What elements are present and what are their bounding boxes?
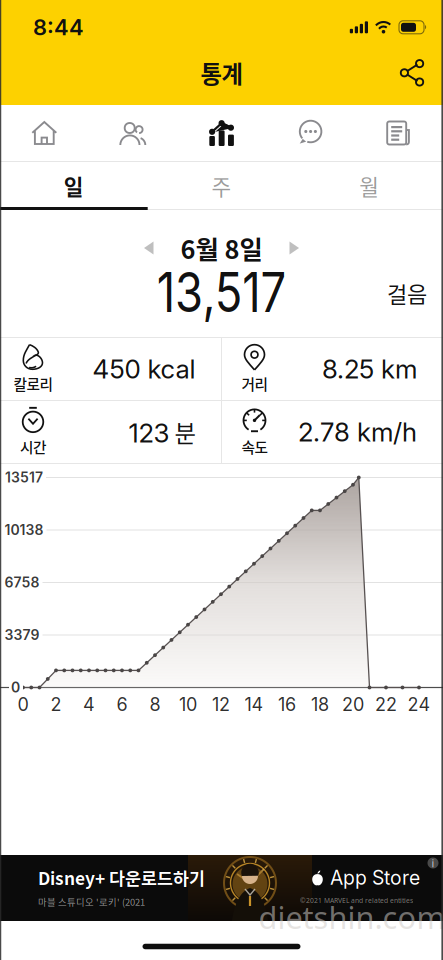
staticText: 분 <box>174 415 195 449</box>
staticText: 거리 <box>241 373 267 394</box>
staticText: 마블 스튜디오 '로키' (2021 <box>38 895 145 908</box>
staticText: 통계 <box>200 56 242 90</box>
staticText: 걸음 <box>387 277 427 309</box>
staticText: 일 <box>64 171 84 201</box>
staticText: 속도 <box>241 436 267 457</box>
staticText: 8:44 <box>33 14 84 41</box>
staticText: 2.78 km/h <box>298 416 417 448</box>
staticText: 0 <box>17 694 28 715</box>
staticText: i <box>431 856 434 870</box>
staticText: Disney+ 다운로드하기 <box>38 865 205 890</box>
staticText: 10 <box>179 694 197 715</box>
staticText: 8 <box>149 694 160 715</box>
button[interactable]: 주 <box>148 162 295 210</box>
staticText: 12 <box>212 694 230 715</box>
button[interactable]: 홈 <box>0 105 89 161</box>
staticText: 3379 <box>4 626 39 643</box>
staticText: 주 <box>211 171 231 201</box>
staticText: 14 <box>244 694 263 715</box>
staticText: 칼로리 <box>13 373 52 394</box>
button[interactable]: 이전 날짜 <box>144 241 180 254</box>
staticText: 0 <box>11 679 20 696</box>
button[interactable]: 통계 <box>177 105 266 161</box>
button[interactable]: 공유 <box>400 60 443 86</box>
button[interactable]: 다음 날짜 <box>262 241 299 254</box>
staticText: 10138 <box>4 521 43 538</box>
button[interactable]: 월 <box>295 162 443 210</box>
staticText: 123 <box>128 417 169 449</box>
staticText: 6 <box>116 694 127 715</box>
staticText: 2 <box>50 694 61 715</box>
button[interactable]: 일 <box>0 162 148 210</box>
staticText: 18 <box>311 694 329 715</box>
staticText: 16 <box>278 694 296 715</box>
staticText: 6758 <box>4 574 39 591</box>
staticText: 24 <box>407 694 430 715</box>
button[interactable]: 뉴스 <box>354 105 443 161</box>
staticText: dietshin.com <box>258 897 443 937</box>
staticText: 6월 8일 <box>180 230 262 266</box>
staticText: 22 <box>375 694 397 715</box>
staticText: App Store <box>330 866 420 889</box>
staticText: 4 <box>83 694 95 715</box>
staticText: 20 <box>342 694 364 715</box>
button[interactable]: 채팅 <box>266 105 354 161</box>
staticText: 8.25 km <box>322 353 417 385</box>
button[interactable]: 친구 <box>89 105 177 161</box>
staticText: 450 kcal <box>92 353 195 385</box>
staticText: 13,517 <box>143 259 299 325</box>
staticText: 13517 <box>5 469 43 486</box>
staticText: ©2021 MARVEL and related entities <box>300 896 413 905</box>
button[interactable]: Disney+ 광고 <box>0 855 443 921</box>
staticText: 시간 <box>20 436 46 457</box>
staticText: 월 <box>359 171 379 201</box>
